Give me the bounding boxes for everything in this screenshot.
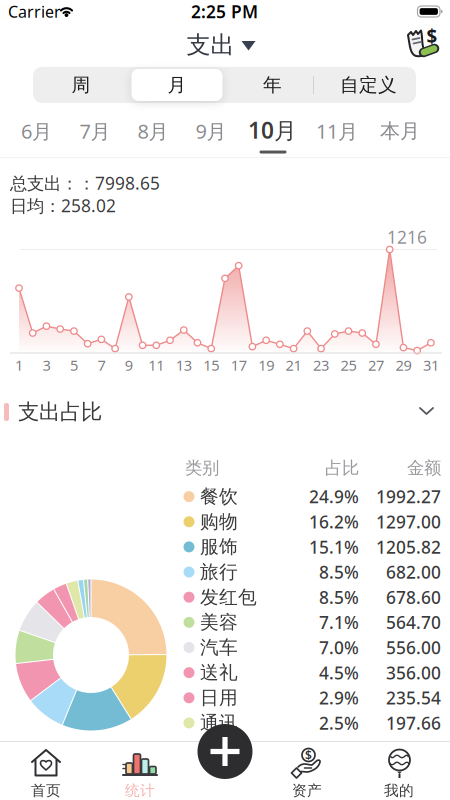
staticText: 2.5% (319, 711, 359, 734)
button[interactable]: $ (272, 746, 342, 800)
staticText: 8.5% (319, 586, 359, 609)
staticText: 4.5% (319, 661, 359, 684)
staticText: 5 (70, 355, 78, 375)
staticText: 汽车 (200, 636, 238, 659)
staticText: 统计 (125, 781, 155, 799)
staticText: 发红包 (200, 586, 257, 609)
staticText: 金额 (407, 457, 441, 479)
staticText: 24.9% (309, 485, 359, 508)
button[interactable]: 8月 (0, 0, 56, 28)
staticText: 购物 (200, 510, 238, 533)
staticText: 7.1% (319, 611, 359, 634)
staticText: 1992.27 (376, 485, 441, 508)
button[interactable]: 发红包 (183, 585, 448, 610)
button[interactable]: 首页 (11, 746, 81, 800)
staticText: 556.00 (386, 636, 441, 659)
staticText: 支出 (186, 30, 234, 60)
staticText: 日均：258.02 (10, 194, 116, 217)
staticText: 服饰 (200, 535, 238, 558)
button[interactable] (197, 724, 252, 779)
staticText: 总支出：：7998.65 (10, 171, 160, 194)
button[interactable]: 周 (0, 0, 60, 30)
button[interactable]: 自定义 (0, 0, 70, 30)
button[interactable]: 支出 (166, 30, 276, 60)
staticText: 235.54 (386, 686, 441, 709)
staticText: 8月 (137, 118, 168, 144)
staticText: 564.70 (386, 611, 441, 634)
button[interactable]: 美容 (183, 610, 448, 635)
staticText: 通讯 (200, 711, 238, 734)
staticText: 2:25 PM (191, 0, 258, 23)
button[interactable]: 汽车 (183, 635, 448, 660)
button[interactable]: 月 (0, 0, 60, 30)
button[interactable] (131, 69, 222, 101)
staticText: 11 (148, 355, 164, 375)
staticText: 美容 (200, 611, 238, 634)
staticText: 9月 (195, 118, 226, 144)
staticText: 旅行 (200, 561, 238, 583)
staticText: 13 (176, 355, 192, 375)
staticText: 餐饮 (200, 485, 238, 508)
staticText: 1205.82 (376, 535, 441, 558)
staticText: 9 (125, 355, 133, 375)
staticText: 日用 (200, 686, 238, 709)
staticText: 682.00 (386, 560, 441, 583)
staticText: 占比 (325, 457, 359, 479)
staticText: 15 (203, 355, 219, 375)
staticText: 8.5% (319, 560, 359, 583)
staticText: Carrier (8, 1, 61, 22)
staticText: 11月 (316, 118, 358, 144)
button[interactable]: 服饰 (183, 534, 448, 559)
staticText: 19 (258, 355, 274, 375)
staticText: 27 (368, 355, 384, 375)
staticText: 25 (340, 355, 356, 375)
staticText: 197.66 (386, 711, 441, 734)
button[interactable]: 购物 (183, 509, 448, 534)
button[interactable]: 旅行 (183, 559, 448, 584)
button[interactable]: 餐饮 (183, 484, 448, 509)
staticText: 31 (423, 355, 439, 375)
staticText: 首页 (31, 781, 61, 799)
button[interactable]: 11月 (0, 0, 60, 28)
staticText: 年 (263, 73, 282, 96)
staticText: 支出占比 (18, 399, 102, 425)
button[interactable]: 我的 (364, 746, 434, 800)
staticText: 15.1% (309, 535, 359, 558)
staticText: 16.2% (309, 510, 359, 533)
staticText: 7 (97, 355, 105, 375)
button[interactable]: 统计 (105, 746, 175, 800)
button[interactable]: 7月 (0, 0, 56, 28)
staticText: 类别 (185, 457, 219, 479)
staticText: $ (305, 747, 312, 763)
button[interactable]: 年 (0, 0, 60, 30)
staticText: 2.9% (319, 686, 359, 709)
button[interactable]: 日用 (183, 685, 448, 710)
button[interactable]: 本月 (0, 0, 60, 28)
button[interactable]: 送礼 (183, 660, 448, 685)
staticText: 7.0% (319, 636, 359, 659)
staticText: 678.60 (386, 586, 441, 609)
staticText: 23 (313, 355, 329, 375)
button[interactable]: 通讯 (183, 710, 448, 735)
button[interactable]: $ (402, 26, 442, 62)
staticText: 10月 (248, 115, 297, 145)
staticText: 7月 (79, 118, 110, 144)
staticText: 21 (286, 355, 302, 375)
staticText: 周 (71, 73, 90, 96)
staticText: 月 (167, 73, 186, 96)
staticText: 自定义 (340, 73, 397, 96)
staticText: 6月 (21, 118, 52, 144)
button[interactable]: 6月 (0, 0, 56, 28)
staticText: 1297.00 (376, 510, 441, 533)
button[interactable] (412, 400, 441, 423)
staticText: 356.00 (386, 661, 441, 684)
staticText: 17 (231, 355, 247, 375)
staticText: 3 (42, 355, 50, 375)
staticText: 送礼 (200, 661, 238, 684)
button[interactable]: 10月 (0, 0, 64, 28)
button[interactable]: 9月 (0, 0, 56, 28)
staticText: 29 (395, 355, 411, 375)
staticText: 1 (15, 355, 23, 375)
staticText: 本月 (380, 119, 420, 143)
staticText: 资产 (292, 781, 322, 799)
